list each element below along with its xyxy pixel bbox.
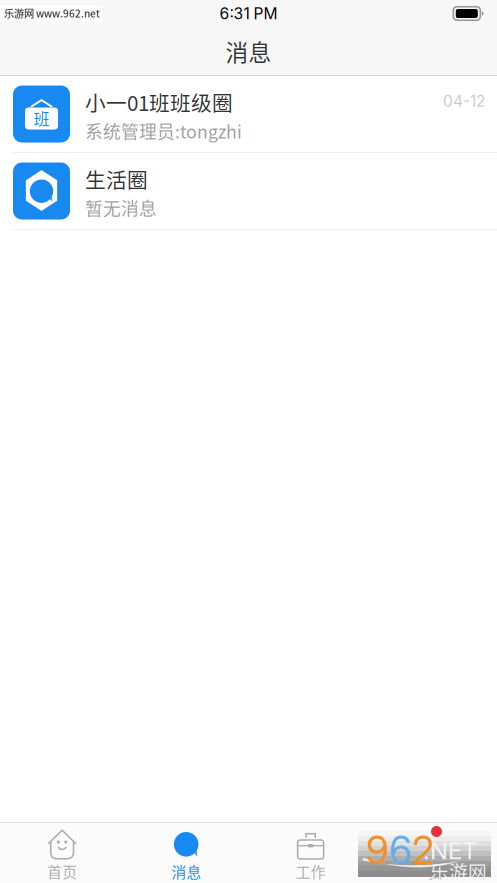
staticText: 生活圈 (85, 164, 148, 194)
staticText: 首页 (47, 861, 77, 882)
button[interactable]: 首页 (0, 823, 124, 883)
staticText: 小一01班班级圈 (85, 87, 233, 117)
button[interactable]: 我 (373, 823, 497, 883)
staticText: 乐游网 (430, 857, 487, 883)
staticText: 消息 (171, 861, 201, 882)
staticText: 2 (412, 827, 434, 874)
staticText: 我 (427, 861, 442, 882)
staticText: 暂无消息 (85, 195, 157, 221)
staticText: 工作 (296, 861, 326, 882)
button[interactable]: 班 (0, 76, 497, 153)
staticText: 9 (366, 827, 389, 874)
button[interactable]: 工作 (248, 823, 373, 883)
staticText: .NET (423, 836, 477, 865)
staticText: 6 (389, 827, 412, 874)
button[interactable]: 生活圈 (0, 153, 497, 230)
staticText: 04-12 (443, 92, 485, 111)
staticText: 乐游网 www.962.net (4, 6, 100, 20)
staticText: 班 (33, 106, 49, 130)
staticText: 系统管理员:tongzhi (85, 118, 242, 144)
button[interactable]: 消息 (124, 823, 248, 883)
staticText: 6:31 PM (219, 4, 277, 23)
staticText: 消息 (225, 35, 271, 67)
